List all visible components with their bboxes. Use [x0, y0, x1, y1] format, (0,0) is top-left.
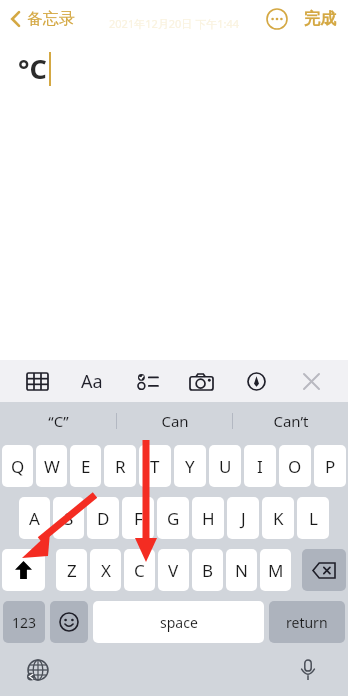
button[interactable]: Z — [56, 549, 87, 591]
button[interactable]: D — [87, 497, 119, 539]
button[interactable]: Q — [2, 445, 33, 487]
staticText: H — [202, 507, 215, 530]
button[interactable]: J — [227, 497, 259, 539]
button[interactable]: H — [192, 497, 224, 539]
button[interactable]: Switch keyboard — [22, 654, 54, 686]
staticText: C — [134, 559, 145, 582]
staticText: N — [235, 559, 248, 582]
staticText: 123 — [12, 613, 37, 632]
staticText: 2021年12月20日 下午1:44 — [109, 16, 240, 31]
staticText: L — [309, 507, 318, 530]
button[interactable]: K — [262, 497, 294, 539]
button[interactable]: return — [269, 601, 345, 643]
button[interactable]: E — [70, 445, 101, 487]
button[interactable]: N — [226, 549, 257, 591]
staticText: Q — [11, 455, 25, 478]
button[interactable]: Emoji — [50, 601, 88, 643]
staticText: °C — [18, 50, 47, 87]
button[interactable]: Checklist — [132, 366, 162, 396]
button[interactable]: space — [93, 601, 264, 643]
button[interactable]: Close keyboard — [296, 366, 326, 396]
button[interactable]: O — [279, 445, 311, 487]
button[interactable]: Markup — [241, 366, 271, 396]
staticText: Can’t — [273, 411, 309, 431]
staticText: X — [101, 559, 111, 582]
staticText: 备忘录 — [27, 9, 75, 29]
staticText: Can — [161, 411, 189, 431]
staticText: D — [97, 507, 110, 530]
staticText: space — [160, 613, 198, 632]
button[interactable]: W — [36, 445, 67, 487]
staticText: Aa — [81, 369, 103, 394]
button[interactable]: L — [297, 497, 329, 539]
staticText: Z — [67, 559, 77, 582]
button[interactable]: Text format — [77, 366, 107, 396]
staticText: R — [115, 455, 126, 478]
button[interactable]: U — [209, 445, 241, 487]
staticText: U — [219, 455, 232, 478]
button[interactable]: C — [124, 549, 155, 591]
staticText: B — [202, 559, 214, 582]
staticText: K — [273, 507, 284, 530]
button[interactable]: Can’t — [233, 402, 348, 440]
staticText: 完成 — [304, 9, 336, 29]
button[interactable]: A — [19, 497, 50, 539]
button[interactable]: T — [139, 445, 171, 487]
button[interactable]: Can — [117, 402, 232, 440]
button[interactable]: G — [157, 497, 189, 539]
button[interactable]: S — [53, 497, 84, 539]
button[interactable]: “C” — [0, 402, 116, 440]
button[interactable]: Y — [174, 445, 206, 487]
button[interactable]: M — [260, 549, 291, 591]
staticText: W — [44, 455, 60, 478]
staticText: I — [257, 455, 263, 478]
button[interactable]: Shift — [2, 549, 45, 591]
staticText: “C” — [48, 411, 69, 431]
button[interactable]: R — [104, 445, 136, 487]
staticText: return — [286, 613, 328, 632]
button[interactable]: V — [158, 549, 189, 591]
button[interactable]: 完成 — [300, 5, 340, 33]
button[interactable]: 123 — [3, 601, 45, 643]
staticText: S — [64, 507, 74, 530]
button[interactable]: X — [90, 549, 121, 591]
button[interactable]: More options — [262, 4, 292, 34]
button[interactable]: P — [314, 445, 346, 487]
staticText: G — [167, 507, 180, 530]
button[interactable]: I — [244, 445, 276, 487]
staticText: M — [268, 559, 284, 582]
button[interactable]: B — [192, 549, 223, 591]
staticText: Y — [185, 455, 195, 478]
staticText: T — [150, 455, 160, 478]
staticText: P — [325, 455, 336, 478]
staticText: A — [29, 507, 40, 530]
button[interactable]: Camera — [186, 366, 216, 396]
button[interactable]: Dictation — [292, 654, 324, 686]
staticText: J — [241, 507, 246, 530]
staticText: E — [81, 455, 91, 478]
staticText: V — [168, 559, 179, 582]
staticText: O — [288, 455, 302, 478]
button[interactable]: Table — [22, 366, 52, 396]
button[interactable]: F — [122, 497, 154, 539]
button[interactable]: Backspace — [302, 549, 346, 591]
button[interactable]: 备忘录 — [6, 5, 79, 33]
staticText: F — [134, 507, 143, 530]
